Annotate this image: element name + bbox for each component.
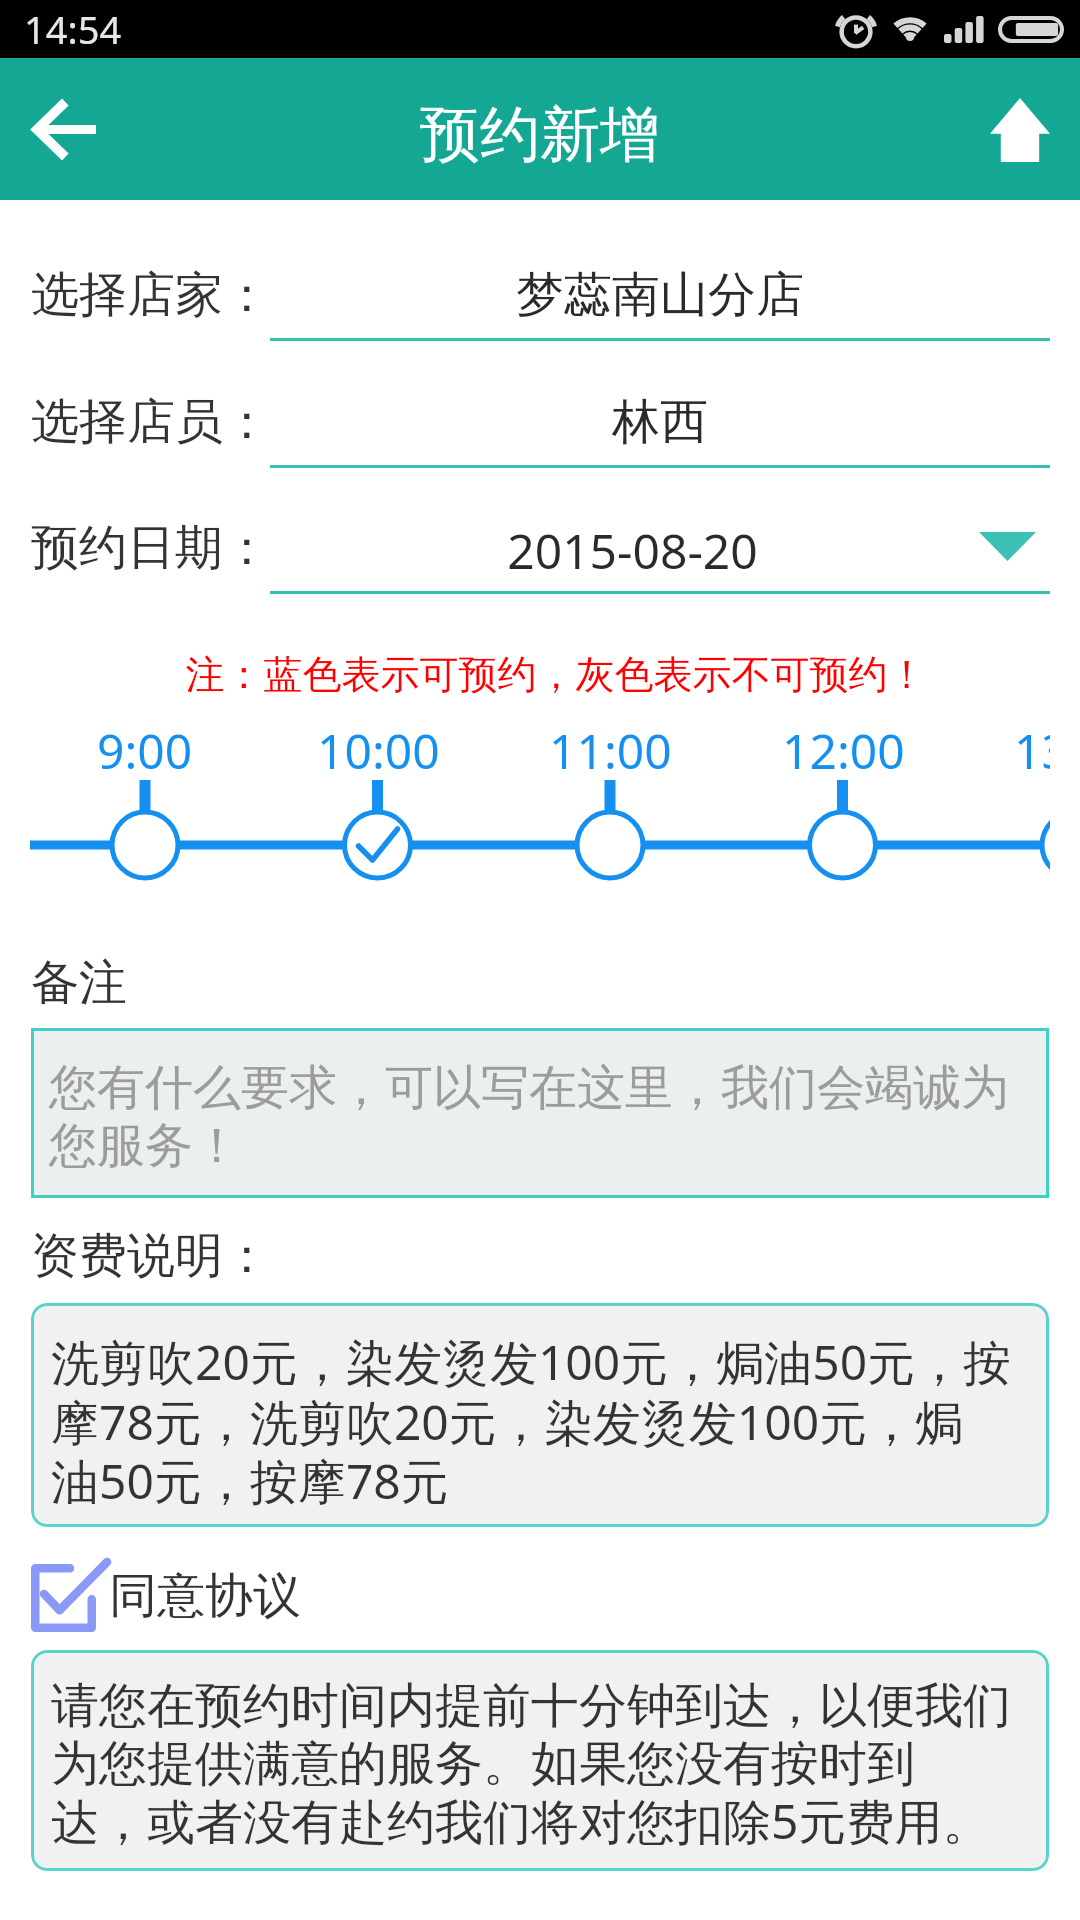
staticText: 9:00 [97,718,193,783]
button[interactable]: 13:00 [955,715,1050,785]
staticText: 您有什么要求，可以写在这里，我们会竭诚为您服务！ [49,1058,1035,1176]
staticText: 注：蓝色表示可预约，灰色表示不可预约！ [16,650,1080,699]
button[interactable]: 选择店员： [0,366,1080,492]
button[interactable]: 预约日期： [0,492,1080,618]
button[interactable]: Select 13:00 [1039,809,1050,881]
button[interactable]: Select 11:00 [574,809,646,881]
staticText: 同意协议 [109,1566,301,1626]
staticText: 梦蕊南山分店 [270,265,1050,325]
button[interactable]: Back [0,58,128,200]
button[interactable]: 您有什么要求，可以写在这里，我们会竭诚为您服务！ [31,1028,1049,1198]
staticText: 10:00 [317,718,440,783]
button[interactable]: Select 12:00 [807,809,879,881]
staticText: 选择店员： [31,392,271,452]
button[interactable]: Select 10:00 [342,809,414,881]
staticText: 13:00 [1014,718,1050,783]
button[interactable]: 同意协议 [31,1560,301,1632]
staticText: 14:54 [24,3,122,55]
staticText: 林西 [270,392,1050,452]
staticText: 预约新增 [420,97,660,173]
staticText: 资费说明： [31,1226,271,1286]
staticText: 12:00 [782,718,905,783]
staticText: 预约日期： [31,518,271,578]
staticText: 选择店家： [31,265,271,325]
staticText: 洗剪吹20元，染发烫发100元，焗油50元，按摩78元，洗剪吹20元，染发烫发1… [51,1329,1035,1513]
button[interactable]: 选择店家： [0,239,1080,365]
button[interactable]: 9:00 [30,715,265,785]
staticText: 11:00 [549,718,672,783]
button[interactable]: 11:00 [490,715,730,785]
button[interactable]: Select 9:00 [109,809,181,881]
button[interactable]: 10:00 [258,715,498,785]
staticText: 请您在预约时间内提前十分钟到达，以便我们为您提供满意的服务。如果您没有按时到 达… [51,1676,1035,1853]
button[interactable]: Home [952,58,1080,200]
button[interactable]: 12:00 [723,715,963,785]
staticText: 备注 [31,953,127,1013]
staticText: 2015-08-20 [270,518,995,583]
